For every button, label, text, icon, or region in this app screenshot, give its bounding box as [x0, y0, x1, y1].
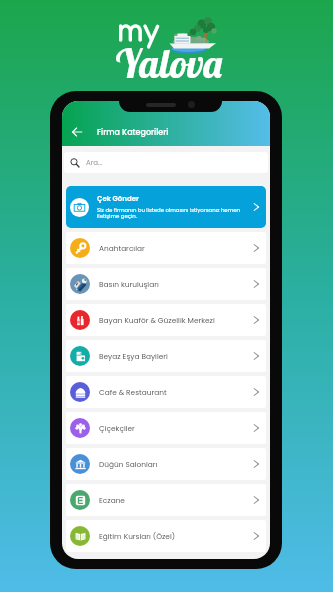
- staticText: Beyaz Eşya Bayileri: [99, 351, 250, 361]
- staticText: my: [117, 16, 159, 47]
- button[interactable]: Çiçekçiler: [66, 412, 266, 444]
- button[interactable]: Anahtarcılar: [66, 232, 266, 264]
- staticText: Anahtarcılar: [99, 243, 250, 253]
- button[interactable]: Cafe & Restaurant: [66, 376, 266, 408]
- button[interactable]: Çek Gönder: [66, 186, 266, 228]
- button[interactable]: Eczane: [66, 484, 266, 516]
- button[interactable]: Bayan Kuaför & Güzellik Merkezi: [66, 304, 266, 336]
- staticText: Basın kuruluşları: [99, 279, 250, 289]
- staticText: Ara...: [86, 158, 103, 168]
- button[interactable]: Düğün Salonları: [66, 448, 266, 480]
- staticText: Cafe & Restaurant: [99, 387, 250, 397]
- staticText: Çiçekçiler: [99, 423, 250, 433]
- button[interactable]: Back: [66, 121, 88, 143]
- staticText: Yalova: [114, 39, 224, 88]
- button[interactable]: Basın kuruluşları: [66, 268, 266, 300]
- staticText: Çek Gönder: [97, 194, 139, 204]
- staticText: Eczane: [99, 495, 250, 505]
- staticText: Bayan Kuaför & Güzellik Merkezi: [99, 315, 250, 325]
- staticText: Düğün Salonları: [99, 459, 250, 469]
- staticText: Firma Kategorileri: [97, 127, 169, 138]
- button[interactable]: Search: [64, 152, 268, 173]
- staticText: Siz de firmanın bu listede olmasını isti…: [97, 206, 241, 220]
- button[interactable]: Beyaz Eşya Bayileri: [66, 340, 266, 372]
- button[interactable]: Eğitim Kursları (Özel): [66, 520, 266, 552]
- staticText: Eğitim Kursları (Özel): [99, 531, 250, 541]
